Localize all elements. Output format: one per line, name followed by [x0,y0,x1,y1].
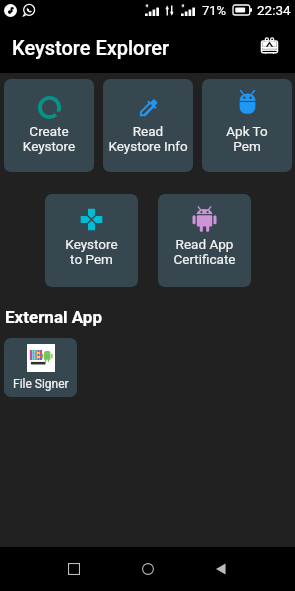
button[interactable]: Read Keystore Info [103,79,193,172]
button[interactable]: Read App Certificate [158,194,251,287]
staticText: External App [5,307,102,327]
staticText: Read Keystore Info [103,123,193,154]
button[interactable]: Recents [52,547,96,591]
button[interactable]: File Signer [4,338,77,397]
button[interactable]: Keystore to Pem [45,194,138,287]
staticText: Keystore to Pem [45,236,138,267]
button[interactable]: Gift [252,28,286,62]
staticText: File Signer [13,377,69,391]
staticText: Apk To Pem [202,123,292,154]
button[interactable]: Home [126,547,170,591]
staticText: 22:34 [257,2,291,18]
button[interactable]: Back [199,547,243,591]
staticText: 71% [202,3,227,18]
button[interactable]: Apk To Pem [202,79,292,172]
staticText: Read App Certificate [158,236,251,267]
button[interactable]: Create Keystore [4,79,94,172]
staticText: Create Keystore [4,123,94,154]
staticText: Keystore Explorer [12,36,170,59]
